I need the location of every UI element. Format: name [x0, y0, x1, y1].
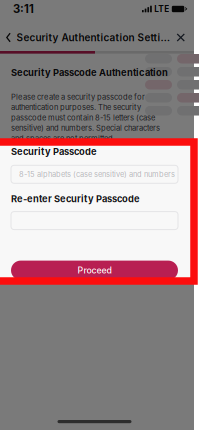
staticText: Security Passcode Authentication [11, 67, 168, 78]
staticText: Please create a security passcode for au… [11, 92, 160, 143]
staticText: Re-enter Security Passcode [11, 193, 140, 205]
staticText: Security Passcode [11, 146, 97, 157]
button[interactable]: Back [0, 32, 16, 43]
button[interactable]: Close [172, 32, 194, 43]
staticText: 8-15 alphabets (case sensitive) and numb… [19, 170, 175, 179]
staticText: Security Authentication Settings [16, 31, 172, 44]
button[interactable]: Proceed [11, 261, 178, 280]
staticText: Proceed [77, 265, 111, 276]
staticText: 3:11 [13, 2, 34, 16]
staticText: LTE [154, 4, 169, 14]
